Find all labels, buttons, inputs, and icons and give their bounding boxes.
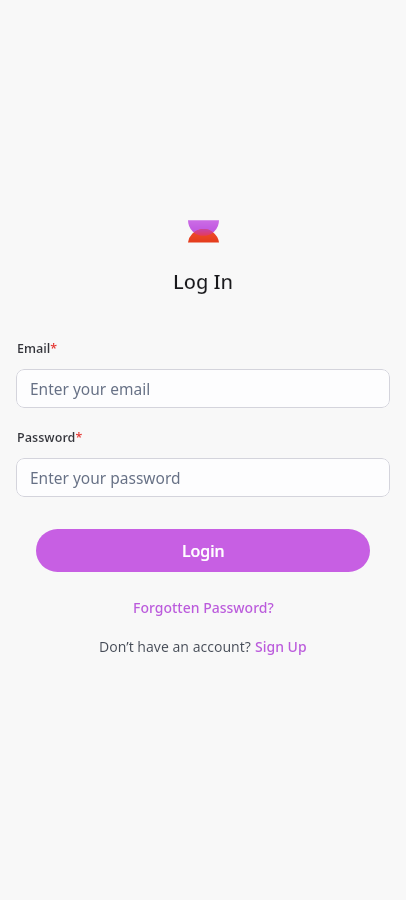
button[interactable]: Forgotten Password? — [133, 598, 274, 617]
button[interactable]: Enter your password — [16, 458, 390, 497]
staticText: Enter your email — [30, 378, 151, 399]
button[interactable]: Sign Up — [255, 637, 307, 656]
staticText: Login — [182, 540, 225, 562]
button[interactable]: Enter your email — [16, 369, 390, 408]
staticText: Forgotten Password? — [133, 598, 274, 617]
staticText: Sign Up — [255, 637, 307, 656]
staticText: Log In — [173, 268, 234, 295]
button[interactable]: Login — [36, 529, 370, 572]
staticText: Enter your password — [30, 467, 181, 488]
staticText: Don’t have an account? — [99, 637, 255, 656]
staticText: Password* — [17, 429, 83, 446]
staticText: Email* — [17, 340, 58, 357]
